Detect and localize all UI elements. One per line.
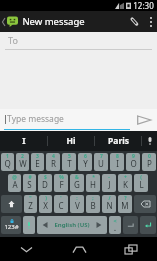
staticText: @ xyxy=(12,174,17,181)
staticText: To xyxy=(8,34,18,46)
button[interactable]: More options xyxy=(144,11,157,32)
staticText: L xyxy=(139,179,144,190)
button[interactable]: 5 xyxy=(62,153,76,171)
button[interactable]: Voice xyxy=(23,216,35,234)
button[interactable]: ; xyxy=(86,195,100,213)
button[interactable]: Hi xyxy=(48,131,94,151)
staticText: V xyxy=(75,200,80,211)
button[interactable]: 0 xyxy=(142,153,156,171)
staticText: 5 xyxy=(68,153,71,160)
staticText: U xyxy=(98,158,104,169)
staticText: ; xyxy=(92,195,94,202)
button[interactable]: Recent apps xyxy=(105,237,157,261)
button[interactable]: Navigate up, New message xyxy=(0,11,125,32)
staticText: 123# xyxy=(4,223,19,231)
staticText: I xyxy=(22,135,26,147)
button[interactable]: # xyxy=(23,174,36,192)
button[interactable]: 6 xyxy=(78,153,92,171)
staticText: O xyxy=(130,158,137,169)
button[interactable]: : xyxy=(70,195,84,213)
button[interactable]: Undo xyxy=(123,216,138,234)
staticText: K xyxy=(123,179,128,190)
staticText: # xyxy=(28,174,32,181)
button[interactable]: % xyxy=(54,174,68,192)
staticText: B xyxy=(90,200,96,211)
button[interactable]: Period xyxy=(109,216,121,234)
staticText: D xyxy=(42,179,48,190)
button[interactable]: ? xyxy=(118,195,132,213)
staticText: N xyxy=(106,200,113,211)
staticText: : xyxy=(76,195,78,202)
button[interactable]: Enter xyxy=(140,216,156,234)
staticText: 3 xyxy=(36,153,39,160)
button[interactable]: 8 xyxy=(110,153,124,171)
staticText: 0 xyxy=(148,153,151,160)
button[interactable]: 9 xyxy=(126,153,140,171)
button[interactable]: ) xyxy=(39,195,52,213)
button[interactable]: Delete xyxy=(134,195,156,213)
staticText: Paris xyxy=(108,135,129,147)
staticText: H xyxy=(90,179,96,190)
button[interactable]: 2 xyxy=(16,153,29,171)
staticText: Y xyxy=(83,158,88,169)
button[interactable]: Space xyxy=(37,216,107,234)
staticText: ) xyxy=(45,195,47,202)
button[interactable]: " xyxy=(24,195,37,213)
button[interactable]: Home xyxy=(53,237,105,261)
button[interactable]: - xyxy=(102,174,116,192)
button[interactable]: 1 xyxy=(1,153,14,171)
staticText: % xyxy=(59,174,64,181)
staticText: English (US) xyxy=(54,221,90,229)
button[interactable]: 3 xyxy=(31,153,44,171)
button[interactable]: & xyxy=(70,174,84,192)
button[interactable]: Shift xyxy=(1,195,22,213)
staticText: 12:30 xyxy=(133,0,154,11)
staticText: $ xyxy=(44,174,47,181)
button[interactable]: $ xyxy=(38,174,52,192)
staticText: < xyxy=(113,217,117,224)
button[interactable]: Paris xyxy=(95,131,141,151)
staticText: 4 xyxy=(52,153,55,160)
staticText: 1 xyxy=(6,153,9,160)
button[interactable]: Type message xyxy=(0,109,130,131)
button[interactable]: @ xyxy=(8,174,21,192)
staticText: R xyxy=(51,158,56,169)
staticText: T xyxy=(67,158,72,169)
staticText: ? xyxy=(124,195,127,202)
staticText: . xyxy=(114,224,116,234)
staticText: S xyxy=(27,179,32,190)
button[interactable]: * xyxy=(86,174,100,192)
button[interactable]: To xyxy=(0,32,157,50)
staticText: 7 xyxy=(100,153,103,160)
staticText: Q xyxy=(4,158,11,169)
staticText: F xyxy=(59,179,64,190)
button[interactable]: I xyxy=(0,131,47,151)
staticText: 8 xyxy=(116,153,119,160)
button[interactable]: ' xyxy=(54,195,68,213)
staticText: Type message xyxy=(7,113,64,125)
staticText: W xyxy=(19,158,27,169)
staticText: + xyxy=(124,174,127,181)
staticText: & xyxy=(75,174,79,181)
staticText: C xyxy=(58,200,64,211)
staticText: A xyxy=(12,179,18,190)
staticText: P xyxy=(147,158,152,169)
button[interactable]: ( xyxy=(134,174,148,192)
button[interactable]: 7 xyxy=(94,153,108,171)
button[interactable]: + xyxy=(118,174,132,192)
button[interactable]: Send xyxy=(130,109,157,131)
staticText: " xyxy=(29,195,32,202)
button[interactable]: Attach xyxy=(125,11,144,32)
staticText: ' xyxy=(60,195,62,202)
staticText: * xyxy=(92,174,95,181)
button[interactable]: Back xyxy=(0,237,53,261)
button[interactable]: 4 xyxy=(46,153,60,171)
staticText: 9 xyxy=(132,153,135,160)
staticText: X xyxy=(43,200,48,211)
staticText: E xyxy=(35,158,40,169)
button[interactable]: Voice input xyxy=(142,131,157,151)
staticText: M xyxy=(121,200,129,211)
button[interactable]: / xyxy=(102,195,116,213)
button[interactable]: Symbols xyxy=(1,216,21,234)
staticText: G xyxy=(74,179,80,190)
